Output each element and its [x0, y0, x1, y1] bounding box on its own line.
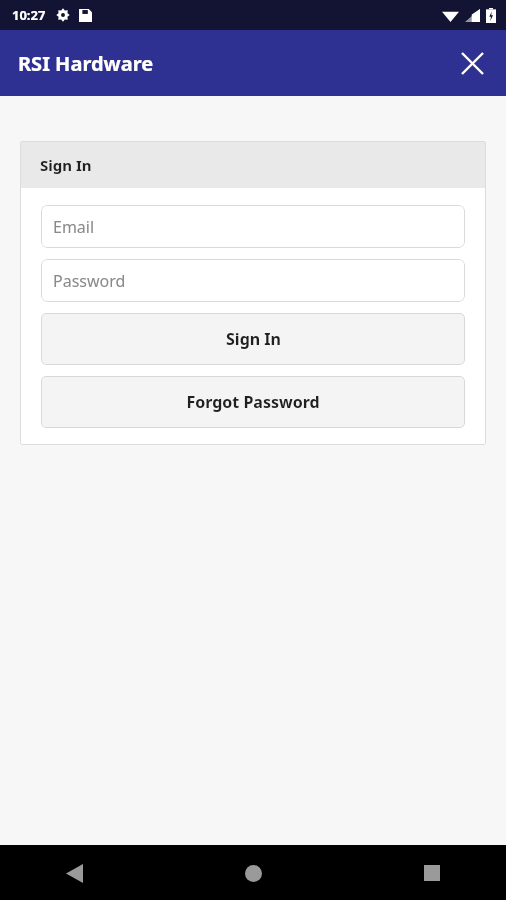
button[interactable]: Home	[227, 847, 279, 899]
staticText: Sign In	[40, 155, 92, 175]
staticText: Sign In	[226, 328, 281, 350]
staticText: RSI Hardware	[18, 50, 154, 77]
staticText: Password	[53, 270, 126, 292]
button[interactable]: Back	[48, 847, 100, 899]
staticText: Email	[53, 216, 95, 238]
staticText: Forgot Password	[186, 391, 320, 413]
button[interactable]: Email	[41, 205, 465, 248]
staticText: 10:27	[12, 6, 46, 24]
button[interactable]: Close	[450, 41, 494, 85]
button[interactable]: Forgot Password	[41, 376, 465, 428]
button[interactable]: Password	[41, 259, 465, 302]
button[interactable]: Recent apps	[406, 847, 458, 899]
button[interactable]: Sign In	[41, 313, 465, 365]
